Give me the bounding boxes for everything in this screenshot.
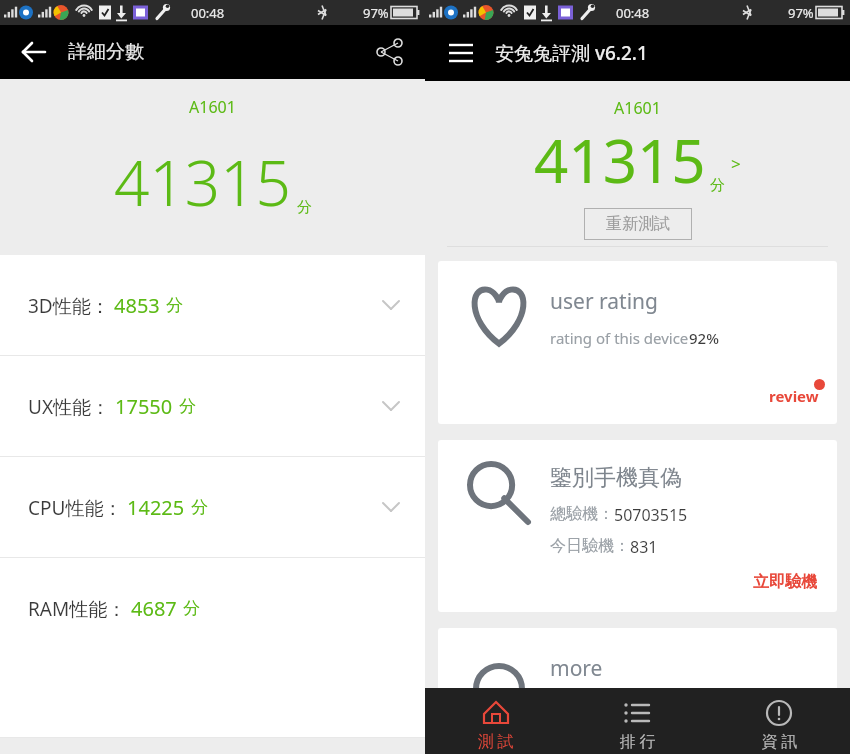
staticText: 17550	[115, 393, 173, 420]
staticText: 立即驗機	[753, 572, 817, 592]
staticText: 50703515	[614, 504, 688, 526]
staticText: 4687	[131, 595, 177, 622]
staticText: 測 試	[477, 730, 514, 752]
staticText: 3D性能：	[28, 293, 110, 319]
button[interactable]: 資 訊	[708, 688, 850, 754]
staticText: 00:48	[191, 4, 225, 22]
staticText: UX性能：	[28, 394, 111, 420]
staticText: review	[769, 386, 819, 406]
staticText: A1601	[189, 96, 236, 118]
staticText: 總驗機：	[550, 504, 614, 524]
button[interactable]: 重新測試	[584, 208, 692, 240]
staticText: 97%	[788, 4, 814, 22]
staticText: 97%	[363, 4, 389, 22]
staticText: more	[550, 654, 603, 683]
staticText: 資 訊	[761, 730, 798, 752]
button[interactable]: 3D性能：	[0, 255, 425, 355]
button[interactable]: Back	[12, 30, 56, 74]
staticText: 92%	[689, 328, 719, 348]
staticText: A1601	[614, 97, 661, 119]
staticText: 分	[191, 497, 208, 518]
staticText: 鑒別手機真偽	[550, 464, 682, 492]
staticText: 排 行	[619, 730, 656, 752]
button[interactable]: more	[438, 628, 837, 728]
button[interactable]: 測 試	[425, 688, 566, 754]
staticText: 00:48	[616, 4, 650, 22]
staticText: >	[731, 152, 741, 175]
staticText: 分	[710, 176, 725, 195]
button[interactable]: 41315	[534, 119, 741, 201]
staticText: 分	[183, 598, 200, 619]
staticText: RAM性能：	[28, 596, 127, 622]
staticText: 分	[166, 295, 183, 316]
staticText: 831	[630, 536, 658, 558]
staticText: 4853	[114, 292, 160, 319]
button[interactable]: UX性能：	[0, 356, 425, 456]
staticText: 分	[297, 198, 312, 217]
button[interactable]: 排 行	[566, 688, 708, 754]
staticText: user rating	[550, 287, 658, 316]
staticText: rating of this device	[550, 328, 689, 348]
staticText: 41315	[114, 140, 292, 224]
staticText: 分	[179, 396, 196, 417]
button[interactable]: Share	[369, 31, 411, 73]
staticText: 重新測試	[606, 214, 670, 234]
button[interactable]: user rating	[438, 261, 837, 424]
staticText: 今日驗機：	[550, 536, 630, 556]
button[interactable]: 鑒別手機真偽	[438, 440, 837, 612]
staticText: 詳細分數	[68, 40, 144, 64]
button[interactable]: CPU性能：	[0, 457, 425, 557]
staticText: CPU性能：	[28, 495, 123, 521]
staticText: 14225	[127, 494, 185, 521]
button[interactable]: RAM性能：	[0, 558, 425, 658]
staticText: 41315	[534, 119, 706, 201]
button[interactable]: Menu	[439, 31, 483, 75]
staticText: 安兔兔評測 v6.2.1	[495, 40, 648, 66]
